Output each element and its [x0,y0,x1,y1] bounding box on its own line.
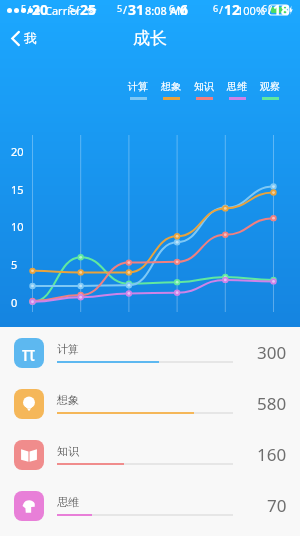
button[interactable]: 计算 [128,80,148,100]
staticText: 8:08 AM [145,3,188,18]
staticText: 观察 [260,80,280,93]
staticText: 15 [11,182,24,197]
button[interactable]: 想象 [161,80,181,100]
button[interactable]: 观察 [260,80,280,100]
staticText: 5 [117,2,123,14]
staticText: / [123,2,128,17]
staticText: π [22,340,36,367]
staticText: 31 [128,0,145,19]
staticText: 160 [257,443,287,466]
button[interactable]: π [0,327,300,378]
staticText: 知识 [194,80,214,93]
staticText: 20 [32,0,49,19]
button[interactable]: 知识 [0,429,300,480]
button[interactable]: 我 [6,25,42,51]
staticText: 20 [11,144,24,159]
staticText: 70 [267,494,287,517]
staticText: 10 [11,219,24,234]
staticText: 100% [237,3,266,18]
staticText: / [75,2,80,17]
staticText: 300 [257,341,287,364]
staticText: 6 [213,2,219,14]
staticText: 6 [180,0,189,19]
staticText: 我 [24,30,37,46]
button[interactable]: 想象 [0,378,300,429]
staticText: 12 [224,0,241,19]
staticText: 计算 [128,80,148,93]
staticText: / [219,2,224,17]
staticText: 5 [69,2,75,14]
staticText: 18 [273,0,290,19]
staticText: 计算 [57,342,79,356]
staticText: / [268,2,273,17]
staticText: 5 [11,257,18,272]
staticText: 想象 [57,393,79,407]
staticText: 5 [21,2,27,14]
staticText: 成长 [133,28,167,49]
staticText: 思维 [57,495,79,509]
staticText: 知识 [57,444,79,458]
staticText: 想象 [161,80,181,93]
staticText: / [27,2,32,17]
button[interactable]: 思维 [227,80,247,100]
staticText: 580 [257,392,287,415]
staticText: / [175,2,180,17]
staticText: 0 [11,295,18,310]
staticText: Carrier [45,3,81,18]
button[interactable]: 知识 [194,80,214,100]
staticText: 思维 [227,80,247,93]
staticText: 6 [169,2,175,14]
staticText: 6 [262,2,268,14]
staticText: 25 [80,0,97,19]
button[interactable]: 思维 [0,480,300,531]
